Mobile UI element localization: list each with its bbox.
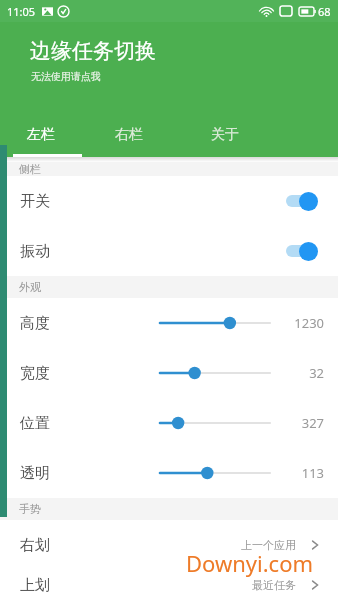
staticText: 开关 [20, 192, 50, 211]
button[interactable]: 右栏 [97, 113, 193, 157]
staticText: 上一个应用 [241, 538, 296, 552]
staticText: 左栏 [27, 126, 55, 144]
staticText: 宽度 [20, 364, 50, 383]
staticText: 无法使用请点我 [31, 70, 101, 83]
button[interactable]: 关于 [193, 113, 338, 157]
button[interactable]: 左栏 [0, 113, 97, 157]
staticText: 32 [309, 364, 324, 382]
staticText: 最近任务 [252, 578, 296, 592]
button[interactable]: 高度 [0, 298, 338, 348]
button[interactable]: 右划 [0, 520, 338, 570]
button[interactable]: 振动 [0, 226, 338, 276]
button[interactable]: 位置 [0, 398, 338, 448]
staticText: 上划 [20, 576, 50, 595]
staticText: 右划 [20, 536, 50, 555]
staticText: 高度 [20, 314, 50, 333]
staticText: 外观 [19, 280, 41, 294]
staticText: 振动 [20, 242, 50, 261]
button[interactable]: 透明 [0, 448, 338, 498]
staticText: 113 [301, 464, 324, 482]
staticText: 右栏 [115, 126, 143, 144]
staticText: 侧栏 [19, 162, 41, 176]
other: Open 右划 options [308, 538, 322, 552]
staticText: 手势 [19, 502, 41, 516]
button[interactable]: 开关 [0, 176, 338, 226]
staticText: 68 [318, 4, 331, 19]
staticText: Downyi.com [186, 548, 314, 578]
staticText: 1230 [294, 314, 324, 332]
staticText: 11:05 [7, 4, 36, 19]
staticText: 关于 [211, 126, 239, 144]
staticText: 327 [301, 414, 324, 432]
button[interactable]: 上划 [0, 570, 338, 600]
staticText: 边缘任务切换 [30, 38, 156, 64]
staticText: 透明 [20, 464, 50, 483]
staticText: 位置 [20, 414, 50, 433]
button[interactable]: 宽度 [0, 348, 338, 398]
other: Open 上划 options [308, 578, 322, 592]
